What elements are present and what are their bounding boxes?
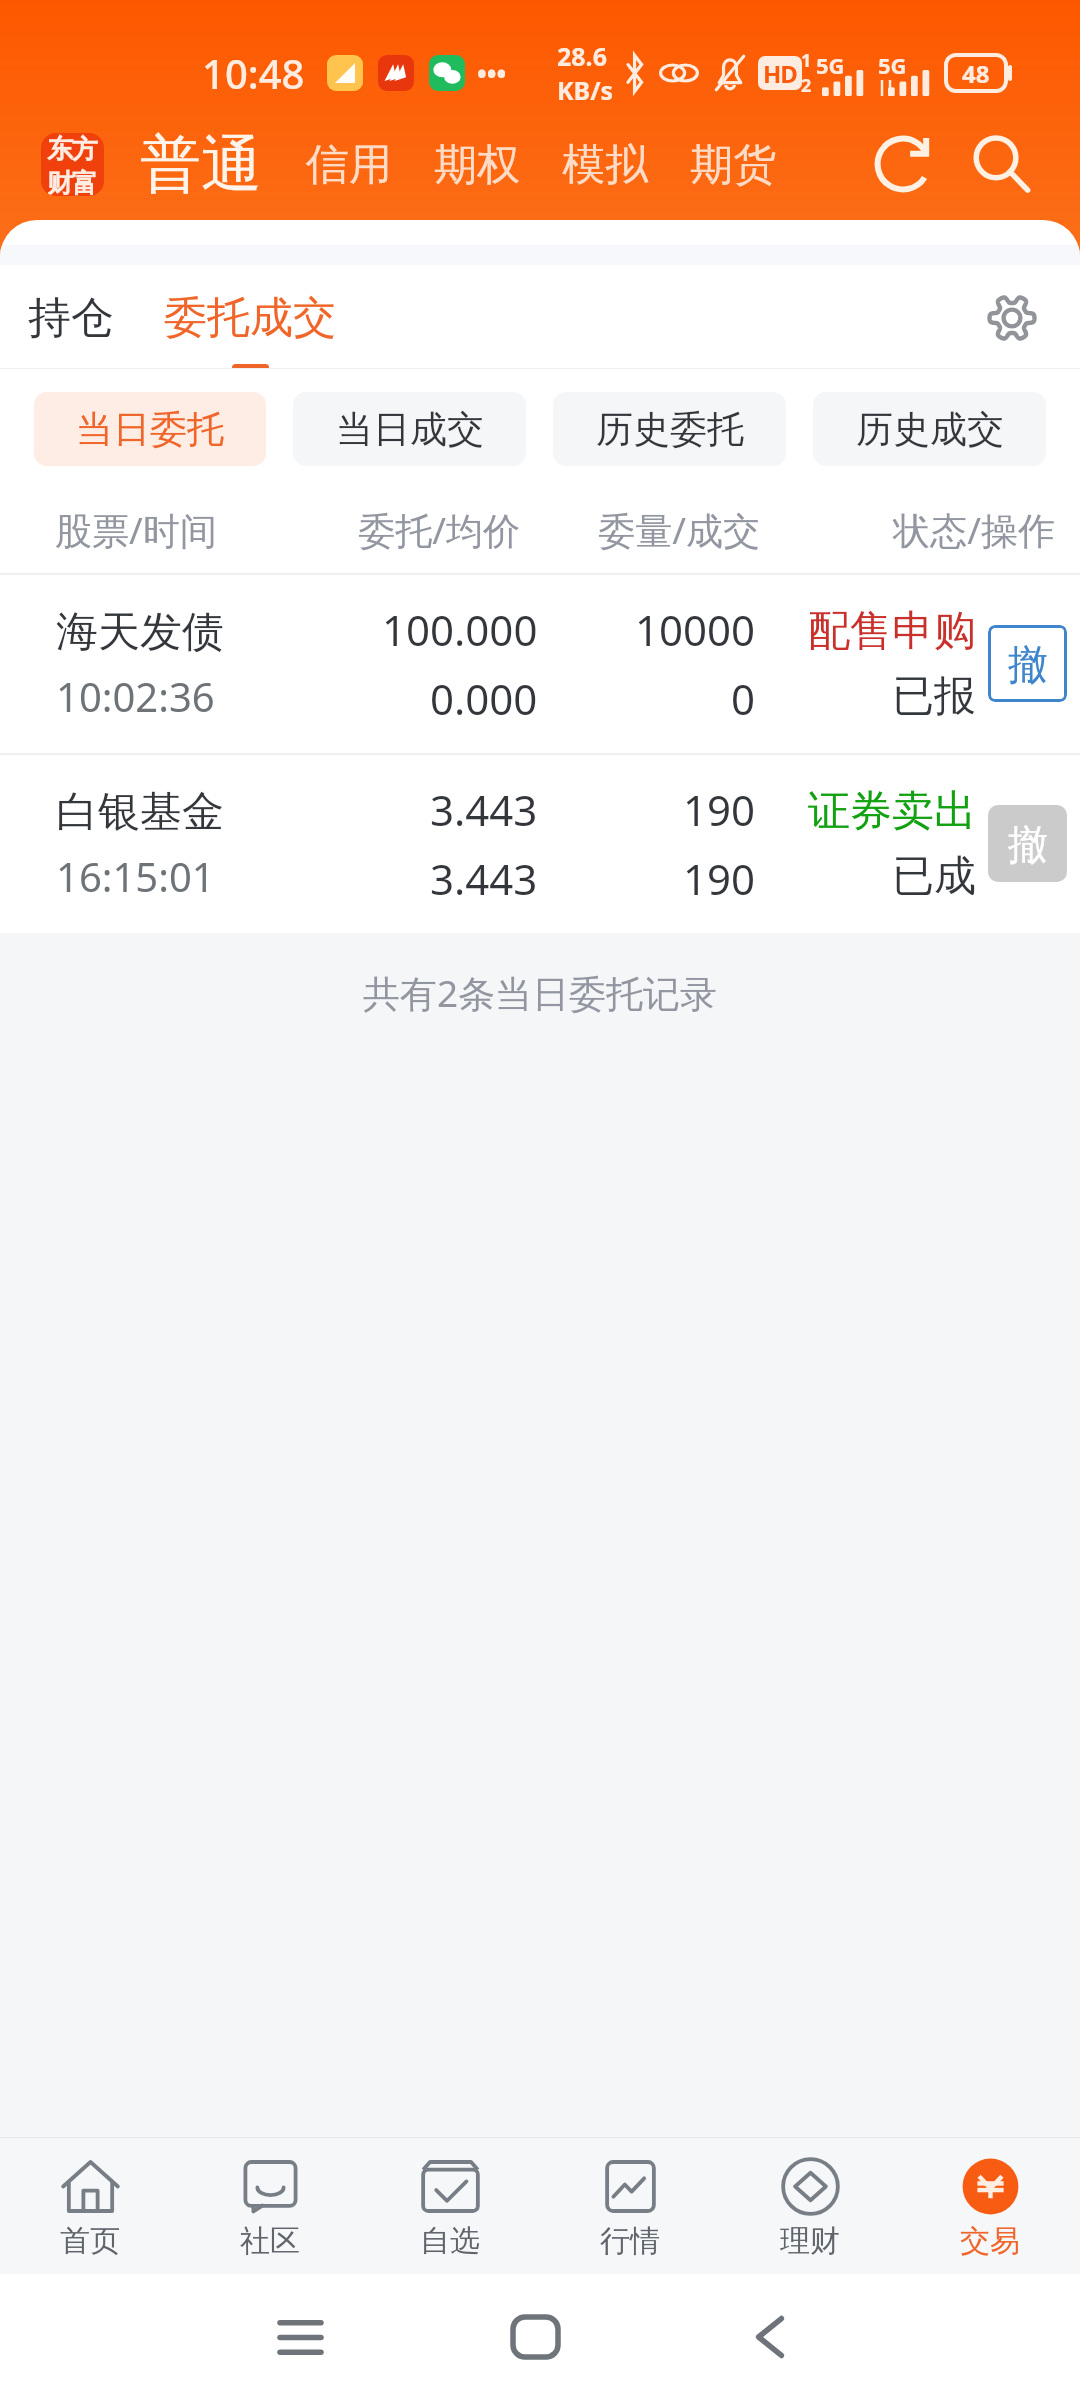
staticText: 社区 <box>240 2222 300 2260</box>
button[interactable]: Back <box>720 2287 820 2387</box>
staticText: 财富 <box>48 167 97 196</box>
staticText: HD <box>763 57 797 90</box>
button[interactable]: 持仓 <box>28 265 114 369</box>
button[interactable]: 东方 <box>41 133 104 196</box>
button[interactable]: 行情 <box>540 2138 720 2274</box>
staticText: 2 <box>801 73 812 98</box>
staticText: 共有2条当日委托记录 <box>0 967 1080 1018</box>
staticText: 历史成交 <box>856 406 1004 453</box>
staticText: 委托/均价 <box>355 504 520 555</box>
staticText: 东方 <box>48 133 97 166</box>
button[interactable]: 历史成交 <box>813 392 1046 466</box>
staticText: 10:48 <box>202 46 305 100</box>
staticText: KB/s <box>557 73 614 107</box>
staticText: 10:02:36 <box>56 669 215 723</box>
button[interactable]: 当日委托 <box>34 392 266 466</box>
button[interactable]: 海天发债 <box>0 575 1080 753</box>
button[interactable]: 撤 <box>988 805 1067 882</box>
staticText: 历史委托 <box>596 406 744 453</box>
staticText: 1 <box>801 48 812 73</box>
button[interactable]: Refresh <box>860 121 946 207</box>
button[interactable]: 自选 <box>360 2138 540 2274</box>
staticText: 撤 <box>1008 819 1048 869</box>
staticText: 海天发债 <box>56 606 224 659</box>
button[interactable]: 信用 <box>306 138 392 192</box>
staticText: 白银基金 <box>56 786 224 839</box>
staticText: 48 <box>962 57 990 90</box>
button[interactable]: 历史委托 <box>553 392 786 466</box>
staticText: 配售申购 <box>808 605 976 658</box>
button[interactable]: 撤 <box>988 625 1067 702</box>
button[interactable]: 普通 <box>140 126 262 203</box>
button[interactable]: Search <box>958 121 1044 207</box>
staticText: 状态/操作 <box>760 504 1055 555</box>
staticText: 撤 <box>1008 639 1048 689</box>
staticText: 自选 <box>420 2222 480 2260</box>
button[interactable]: 期货 <box>690 138 776 192</box>
staticText: 已报 <box>892 670 976 723</box>
staticText: 理财 <box>780 2222 840 2260</box>
staticText: 委托成交 <box>164 291 336 345</box>
staticText: 当日委托 <box>76 406 224 453</box>
staticText: 0 <box>731 670 756 727</box>
staticText: 当日成交 <box>336 406 484 453</box>
staticText: 股票/时间 <box>55 504 355 555</box>
staticText: 28.6 <box>557 39 607 73</box>
button[interactable]: Recents <box>250 2287 350 2387</box>
button[interactable]: 首页 <box>0 2138 180 2274</box>
staticText: 5G <box>816 50 845 80</box>
staticText: 行情 <box>600 2222 660 2260</box>
staticText: 190 <box>683 781 756 838</box>
button[interactable]: 委托成交 <box>164 265 336 369</box>
staticText: 3.443 <box>430 781 538 838</box>
button[interactable]: 白银基金 <box>0 755 1080 933</box>
staticText: 持仓 <box>28 291 114 345</box>
staticText: 100.000 <box>382 601 538 658</box>
staticText: 交易 <box>960 2222 1020 2260</box>
staticText: ••• <box>477 56 507 91</box>
staticText: 证券卖出 <box>808 785 976 838</box>
staticText: 5G <box>878 50 907 80</box>
staticText: 10000 <box>635 601 756 658</box>
staticText: 16:15:01 <box>56 849 215 903</box>
button[interactable]: 当日成交 <box>293 392 526 466</box>
button[interactable]: Settings <box>969 275 1055 361</box>
button[interactable]: 模拟 <box>562 138 648 192</box>
button[interactable]: 交易 <box>900 2138 1080 2274</box>
staticText: 已成 <box>892 850 976 903</box>
staticText: 190 <box>683 850 756 907</box>
button[interactable]: Home <box>485 2287 585 2387</box>
staticText: 委量/成交 <box>520 504 760 555</box>
button[interactable]: 理财 <box>720 2138 900 2274</box>
staticText: 首页 <box>60 2222 120 2260</box>
staticText: 0.000 <box>430 670 538 727</box>
button[interactable]: 期权 <box>434 138 520 192</box>
staticText: 3.443 <box>430 850 538 907</box>
button[interactable]: 社区 <box>180 2138 360 2274</box>
